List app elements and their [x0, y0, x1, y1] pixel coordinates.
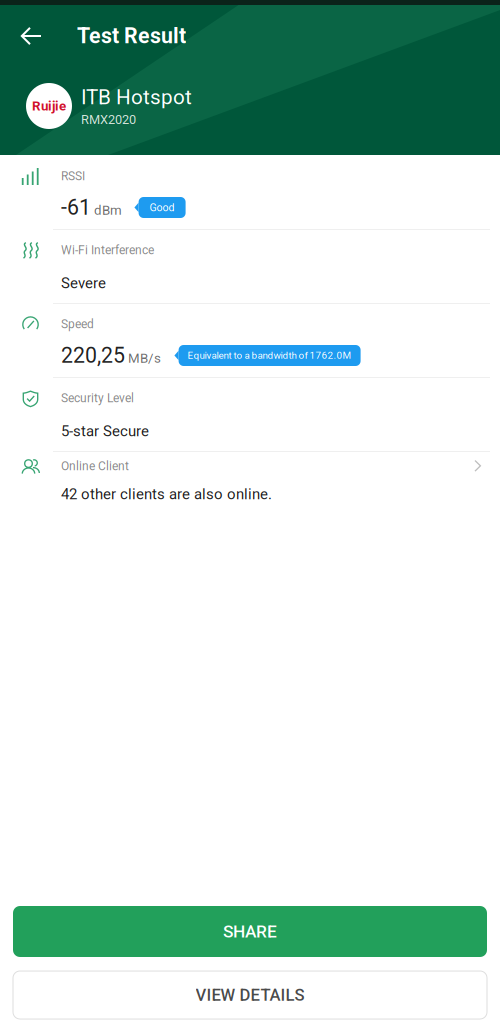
staticText: RSSI — [61, 169, 85, 183]
staticText: Equivalent to a bandwidth of 1762.0M — [188, 350, 352, 361]
staticText: Security Level — [61, 391, 134, 405]
button[interactable]: VIEW DETAILS — [13, 971, 487, 1019]
staticText: 5-star Secure — [61, 422, 149, 440]
staticText: Ruijie — [32, 98, 66, 114]
staticText: Online Client — [61, 459, 129, 473]
button[interactable]: Back — [11, 16, 51, 56]
button[interactable]: Online Client — [0, 451, 500, 525]
staticText: Good — [150, 201, 175, 214]
button[interactable]: SHARE — [13, 906, 487, 957]
staticText: MB/s — [128, 350, 161, 366]
staticText: dBm — [94, 202, 122, 218]
staticText: 220,25 — [61, 343, 125, 368]
staticText: 42 other clients are also online. — [61, 485, 272, 503]
staticText: SHARE — [223, 921, 277, 942]
staticText: Wi-Fi Interference — [61, 243, 154, 257]
staticText: RMX2020 — [81, 112, 136, 127]
staticText: VIEW DETAILS — [195, 985, 304, 1005]
staticText: ITB Hotspot — [81, 85, 192, 109]
staticText: Test Result — [77, 23, 186, 48]
staticText: -61 — [61, 195, 91, 220]
staticText: Severe — [61, 274, 106, 292]
staticText: Speed — [61, 317, 94, 331]
